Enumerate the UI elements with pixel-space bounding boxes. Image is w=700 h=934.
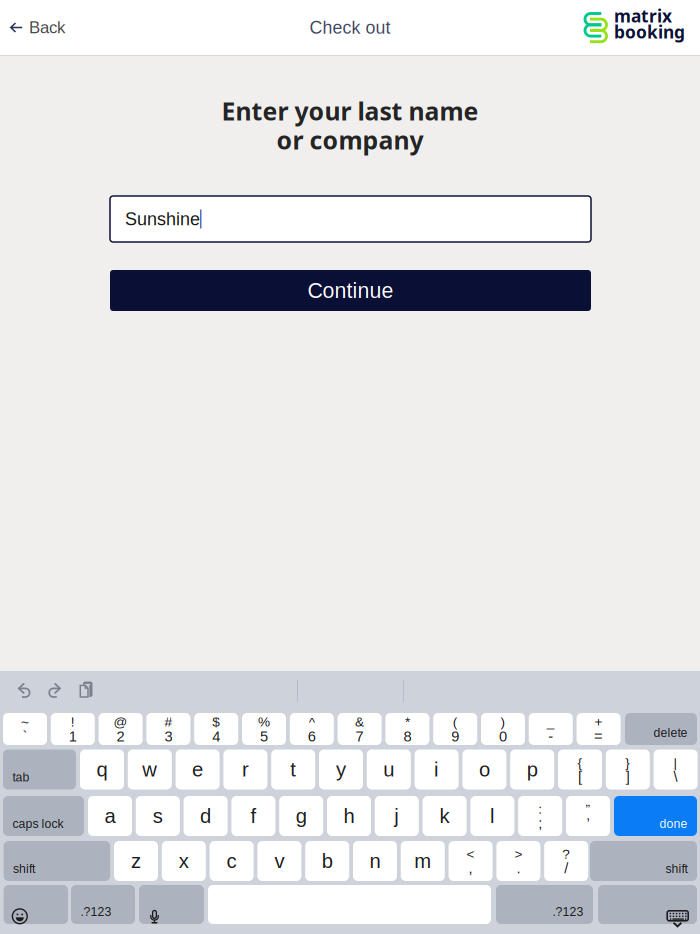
button[interactable]: Back xyxy=(0,0,94,55)
button[interactable]: | xyxy=(654,749,698,789)
staticText: ` xyxy=(22,728,27,745)
button[interactable]: x xyxy=(162,841,206,881)
button[interactable]: .?123 xyxy=(71,885,135,924)
button[interactable]: > xyxy=(496,841,540,881)
button[interactable]: Emoji xyxy=(4,885,68,924)
staticText: _ xyxy=(547,714,555,729)
staticText: . xyxy=(516,860,520,876)
staticText: b xyxy=(322,850,333,872)
staticText: e xyxy=(192,758,203,781)
staticText: Back xyxy=(29,18,65,37)
button[interactable]: l xyxy=(470,796,514,836)
button[interactable]: # xyxy=(146,713,190,745)
staticText: f xyxy=(250,805,256,827)
staticText: p xyxy=(527,758,538,781)
staticText: d xyxy=(200,805,211,827)
button[interactable]: o xyxy=(462,749,506,789)
button[interactable]: Dictate xyxy=(139,885,204,924)
staticText: s xyxy=(153,805,163,827)
button[interactable]: i xyxy=(415,749,459,789)
button[interactable]: u xyxy=(367,749,411,789)
button[interactable]: : xyxy=(518,796,562,836)
button[interactable]: & xyxy=(338,713,382,745)
button[interactable]: m xyxy=(401,841,445,881)
button[interactable]: Paste xyxy=(72,677,100,705)
button[interactable]: ) xyxy=(481,713,525,745)
button[interactable]: } xyxy=(606,749,650,789)
staticText: + xyxy=(595,714,603,729)
staticText: : xyxy=(538,801,542,817)
button[interactable]: k xyxy=(423,796,467,836)
button[interactable]: s xyxy=(136,796,180,836)
button[interactable]: r xyxy=(223,749,267,789)
button[interactable]: f xyxy=(231,796,275,836)
button[interactable]: ! xyxy=(51,713,95,745)
button[interactable]: n xyxy=(353,841,397,881)
button[interactable]: ” xyxy=(566,796,610,836)
button[interactable]: _ xyxy=(529,713,573,745)
staticText: j xyxy=(394,805,399,827)
staticText: * xyxy=(405,714,410,729)
button[interactable]: w xyxy=(128,749,172,789)
staticText: 4 xyxy=(212,728,220,745)
staticText: $ xyxy=(212,714,220,729)
button[interactable]: caps lock xyxy=(3,796,84,836)
staticText: 2 xyxy=(117,728,125,745)
staticText: < xyxy=(467,846,475,862)
staticText: ^ xyxy=(309,714,315,729)
staticText: m xyxy=(414,850,431,872)
staticText: ’ xyxy=(586,815,589,831)
button[interactable]: d xyxy=(184,796,228,836)
button[interactable]: shift xyxy=(590,841,697,881)
button[interactable]: h xyxy=(327,796,371,836)
button[interactable]: c xyxy=(210,841,254,881)
staticText: t xyxy=(290,758,296,781)
staticText: w xyxy=(142,758,157,781)
staticText: [ xyxy=(578,768,582,785)
staticText: y xyxy=(336,758,346,781)
button[interactable]: z xyxy=(114,841,158,881)
button[interactable]: Continue xyxy=(110,270,591,311)
button[interactable]: t xyxy=(271,749,315,789)
button[interactable]: < xyxy=(449,841,493,881)
button[interactable]: { xyxy=(558,749,602,789)
staticText: 8 xyxy=(403,728,411,745)
button[interactable]: * xyxy=(385,713,429,745)
button[interactable]: e xyxy=(176,749,220,789)
button[interactable]: tab xyxy=(3,749,76,789)
button[interactable]: + xyxy=(577,713,621,745)
button[interactable]: ? xyxy=(544,841,588,881)
staticText: = xyxy=(594,728,603,745)
button[interactable]: b xyxy=(305,841,349,881)
button[interactable]: delete xyxy=(625,713,697,745)
button[interactable]: $ xyxy=(194,713,238,745)
button[interactable]: Undo xyxy=(9,675,39,703)
staticText: .?123 xyxy=(552,905,583,918)
staticText: k xyxy=(440,805,450,827)
staticText: .?123 xyxy=(80,905,111,918)
button[interactable]: p xyxy=(510,749,554,789)
button[interactable]: a xyxy=(88,796,132,836)
staticText: delete xyxy=(653,726,687,739)
staticText: booking xyxy=(614,20,685,43)
button[interactable]: v xyxy=(257,841,301,881)
button[interactable]: y xyxy=(319,749,363,789)
staticText: x xyxy=(179,850,189,872)
button[interactable]: ~ xyxy=(3,713,47,745)
button[interactable]: j xyxy=(375,796,419,836)
button[interactable]: g xyxy=(279,796,323,836)
button[interactable]: ^ xyxy=(290,713,334,745)
button[interactable]: Hide keyboard xyxy=(598,885,697,924)
staticText: 5 xyxy=(260,728,268,745)
button[interactable]: done xyxy=(614,796,697,836)
button[interactable]: % xyxy=(242,713,286,745)
staticText: # xyxy=(164,714,172,729)
button[interactable]: ( xyxy=(433,713,477,745)
staticText: i xyxy=(434,758,439,781)
button[interactable]: Redo xyxy=(40,675,70,703)
button[interactable]: q xyxy=(80,749,124,789)
button[interactable]: @ xyxy=(99,713,143,745)
button[interactable]: shift xyxy=(4,841,110,881)
button[interactable]: .?123 xyxy=(496,885,593,924)
